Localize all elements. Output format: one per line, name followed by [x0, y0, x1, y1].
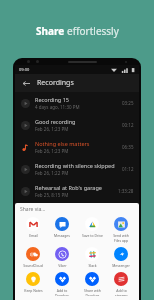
staticText: Viber — [58, 263, 67, 268]
button[interactable]: Recording 15 — [15, 92, 139, 114]
button[interactable]: Keep Notes — [20, 271, 46, 294]
staticText: 4 days ago, 11:30 PM — [35, 104, 80, 110]
staticText: Save to Drive — [82, 233, 103, 238]
staticText: Recordings — [37, 78, 74, 88]
button[interactable]: SoundCloud — [20, 246, 46, 269]
button[interactable]: Rehearsal at Rob's garage — [15, 180, 139, 202]
staticText: Good recording — [35, 118, 76, 125]
staticText: Messenger — [112, 263, 130, 268]
staticText: Email — [29, 233, 38, 238]
staticText: SoundCloud — [23, 263, 43, 268]
staticText: Feb 25, 8:15 PM — [35, 192, 69, 198]
button[interactable]: Nothing else matters — [15, 136, 139, 158]
button[interactable]: Email — [20, 216, 46, 239]
button[interactable]: Add to streams — [108, 271, 134, 297]
staticText: Recording 15 — [35, 96, 69, 103]
staticText: 09:00 — [19, 67, 30, 72]
staticText: Add to streams — [115, 288, 128, 296]
staticText: effortlessly — [67, 24, 119, 38]
staticText: Feb 26, 1:23 PM — [35, 126, 69, 132]
button[interactable]: Slack — [79, 246, 105, 269]
staticText: Share with Dropbox — [84, 288, 101, 296]
staticText: Share via... — [20, 206, 46, 213]
staticText: Recording with silence skipped — [35, 162, 115, 169]
staticText: 03:25 — [122, 100, 134, 106]
staticText: Nothing else matters — [35, 140, 90, 147]
button[interactable]: Recording with silence skipped — [15, 158, 139, 180]
staticText: Slack — [88, 263, 97, 268]
button[interactable]: Viber — [49, 246, 75, 269]
button[interactable]: Share with Dropbox — [79, 271, 105, 297]
button[interactable]: Messages — [49, 216, 75, 239]
staticText: 1:33:28 — [118, 188, 134, 194]
staticText: Rehearsal at Rob's garage — [35, 184, 102, 191]
button[interactable]: Messenger — [108, 246, 134, 269]
button[interactable]: Send with Files app — [108, 216, 134, 244]
staticText: Send with Files app — [113, 233, 129, 243]
button[interactable]: Save to Drive — [79, 216, 105, 239]
staticText: Feb 26, 1:23 PM — [35, 148, 69, 154]
staticText: Share — [36, 24, 67, 38]
staticText: Keep Notes — [24, 288, 43, 293]
staticText: Add to Dropbox — [55, 288, 69, 296]
staticText: Messages — [54, 233, 70, 238]
staticText: Feb 26, 1:22 PM — [35, 170, 69, 176]
staticText: 06:35 — [122, 144, 134, 150]
button[interactable]: Good recording — [15, 114, 139, 136]
staticText: 01:12 — [122, 166, 134, 172]
staticText: 00:12 — [122, 122, 134, 128]
button[interactable]: Back — [20, 77, 32, 89]
button[interactable]: Add to Dropbox — [49, 271, 75, 297]
